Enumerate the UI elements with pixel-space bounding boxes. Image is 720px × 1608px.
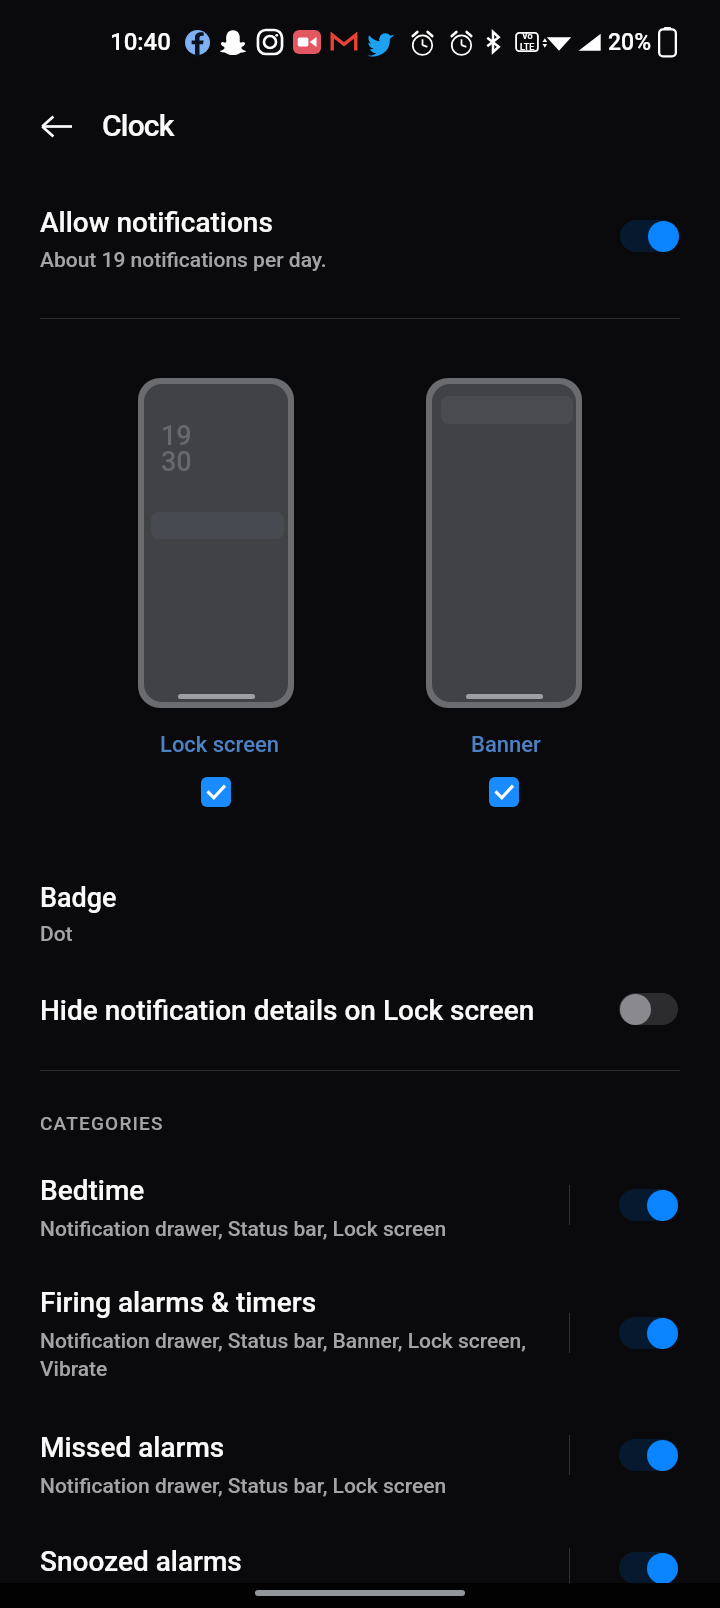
button[interactable]: Lock screen bbox=[138, 378, 294, 708]
button[interactable]: Firing alarms & timers bbox=[0, 1276, 720, 1404]
staticText: 20% bbox=[608, 29, 652, 56]
staticText: Firing alarms & timers bbox=[40, 1286, 317, 1319]
staticText: Notification drawer, Status bar, Lock sc… bbox=[40, 1217, 447, 1242]
button[interactable]: Switch on bbox=[619, 1317, 678, 1349]
staticText: Missed alarms bbox=[40, 1431, 225, 1464]
button[interactable]: Switch on bbox=[619, 1189, 678, 1221]
staticText: 10:40 bbox=[110, 28, 171, 56]
staticText: Notification drawer, Status bar, Lock sc… bbox=[40, 1474, 447, 1499]
button[interactable]: Lock screen checkbox bbox=[201, 777, 231, 807]
staticText: Vo bbox=[522, 31, 533, 42]
button[interactable]: Snoozed alarms bbox=[0, 1535, 720, 1605]
button[interactable]: Bedtime bbox=[0, 1164, 720, 1262]
staticText: Allow notifications bbox=[40, 206, 273, 239]
button[interactable]: Switch on bbox=[619, 1439, 678, 1471]
staticText: Clock bbox=[102, 108, 174, 143]
staticText: Dot bbox=[40, 922, 73, 947]
staticText: Snoozed alarms bbox=[40, 1545, 242, 1578]
button[interactable]: Hide notification details on Lock screen bbox=[0, 978, 720, 1050]
button[interactable]: Lock screen bbox=[154, 729, 285, 761]
button[interactable]: Banner checkbox bbox=[489, 777, 519, 807]
button[interactable]: Badge bbox=[0, 870, 720, 966]
button[interactable]: Banner bbox=[465, 729, 547, 761]
button[interactable]: Back bbox=[32, 102, 80, 150]
button[interactable]: Switch on bbox=[619, 1552, 678, 1584]
button[interactable]: Switch off bbox=[619, 993, 678, 1025]
staticText: Bedtime bbox=[40, 1174, 145, 1207]
staticText: LTE bbox=[520, 42, 535, 53]
staticText: CATEGORIES bbox=[40, 1112, 164, 1134]
button[interactable]: Missed alarms bbox=[0, 1421, 720, 1519]
staticText: Badge bbox=[40, 882, 117, 914]
staticText: Hide notification details on Lock screen bbox=[40, 994, 535, 1027]
staticText: About 19 notifications per day. bbox=[40, 248, 327, 273]
button[interactable]: Allow notifications bbox=[0, 190, 720, 294]
staticText: Notification drawer, Status bar, Banner,… bbox=[40, 1329, 526, 1381]
staticText: 19 30 bbox=[161, 420, 192, 477]
button[interactable]: Banner bbox=[426, 378, 582, 708]
staticText: Banner bbox=[471, 732, 541, 758]
staticText: Lock screen bbox=[160, 732, 279, 758]
button[interactable]: Switch on bbox=[620, 220, 679, 252]
